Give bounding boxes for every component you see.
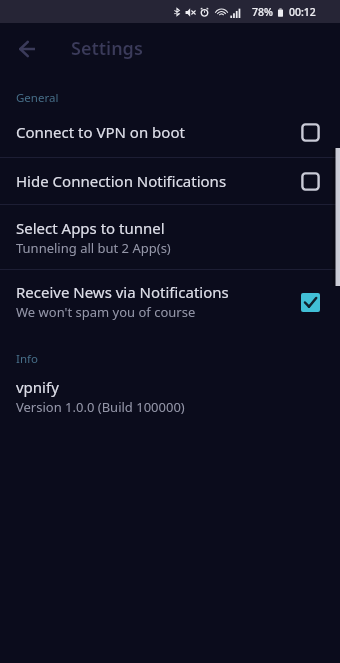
button[interactable]: Connect to VPN on boot xyxy=(0,107,340,157)
staticText: Version 1.0.0 (Build 100000) xyxy=(16,398,185,416)
button[interactable]: Back xyxy=(0,23,52,74)
staticText: Receive News via Notifications xyxy=(16,282,229,302)
button[interactable]: Receive News via Notifications xyxy=(0,270,340,333)
staticText: General xyxy=(16,90,59,106)
staticText: Connect to VPN on boot xyxy=(16,122,185,142)
staticText: Hide Connection Notifications xyxy=(16,171,227,191)
staticText: Tunneling all but 2 App(s) xyxy=(16,239,171,257)
staticText: We won't spam you of course xyxy=(16,303,196,321)
staticText: vpnify xyxy=(16,377,59,397)
staticText: 78% xyxy=(252,5,273,19)
button[interactable]: vpnify xyxy=(0,376,340,416)
staticText: Info xyxy=(16,351,38,367)
staticText: 00:12 xyxy=(289,5,316,19)
staticText: Select Apps to tunnel xyxy=(16,218,165,238)
button[interactable]: Hide Connection Notifications xyxy=(0,158,340,204)
button[interactable]: Select Apps to tunnel xyxy=(0,205,340,269)
staticText: Settings xyxy=(71,36,143,61)
